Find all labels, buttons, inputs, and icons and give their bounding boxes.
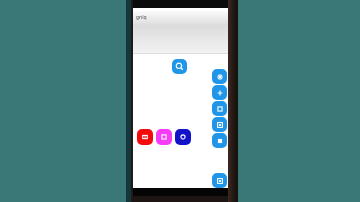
button[interactable]: Stop bbox=[212, 133, 227, 148]
button[interactable]: Search bbox=[172, 59, 187, 74]
staticText: gnlq bbox=[136, 14, 147, 21]
button[interactable]: Add bbox=[212, 85, 227, 100]
button[interactable]: Filter bbox=[156, 129, 172, 145]
button[interactable]: gnlq bbox=[133, 11, 228, 53]
button[interactable]: Record bbox=[137, 129, 153, 145]
button[interactable]: Info bbox=[175, 129, 191, 145]
button[interactable]: Gallery bbox=[212, 173, 227, 188]
button[interactable]: Layers bbox=[212, 101, 227, 116]
button[interactable]: Frame bbox=[212, 117, 227, 132]
button[interactable]: Effects bbox=[212, 69, 227, 84]
